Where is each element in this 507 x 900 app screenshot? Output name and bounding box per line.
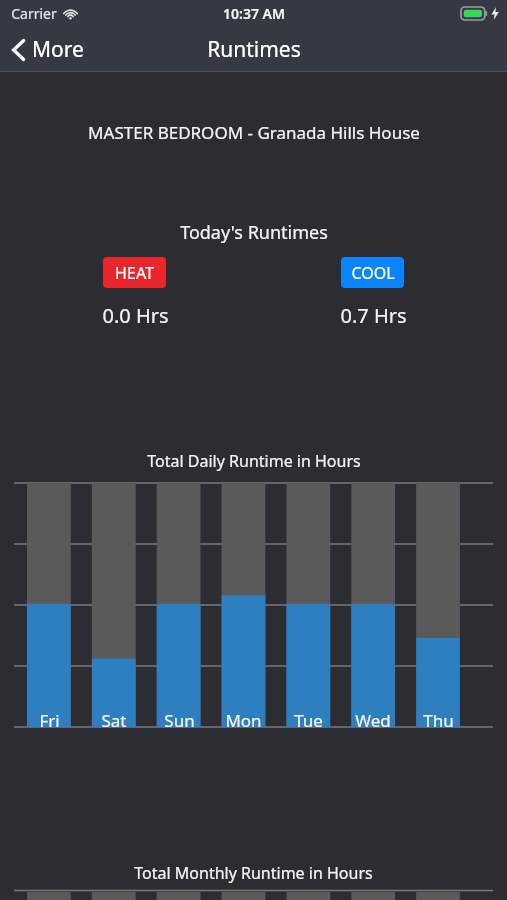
- staticText: Runtimes: [207, 35, 301, 64]
- staticText: Total Monthly Runtime in Hours: [134, 862, 373, 884]
- staticText: MASTER BEDROOM - Granada Hills House: [88, 121, 420, 144]
- staticText: Total Daily Runtime in Hours: [147, 450, 361, 472]
- staticText: Mon: [225, 709, 262, 732]
- button[interactable]: COOL: [341, 257, 404, 288]
- other: Battery: [461, 7, 488, 20]
- other: Charging: [491, 7, 499, 20]
- staticText: Sat: [101, 709, 127, 732]
- staticText: COOL: [351, 262, 395, 284]
- staticText: 10:37 AM: [223, 4, 285, 23]
- staticText: More: [32, 35, 84, 64]
- staticText: Wed: [355, 709, 391, 732]
- staticText: Today's Runtimes: [180, 220, 328, 245]
- staticText: Sun: [164, 709, 195, 732]
- staticText: 0.7 Hrs: [340, 302, 407, 329]
- button[interactable]: HEAT: [103, 257, 166, 288]
- staticText: Thu: [423, 709, 454, 732]
- staticText: Tue: [294, 709, 323, 732]
- button[interactable]: More: [0, 30, 100, 69]
- staticText: Fri: [39, 709, 60, 732]
- staticText: 0.0 Hrs: [102, 302, 169, 329]
- staticText: Carrier: [11, 4, 57, 23]
- other: Wi-Fi: [63, 8, 78, 20]
- staticText: HEAT: [115, 262, 154, 284]
